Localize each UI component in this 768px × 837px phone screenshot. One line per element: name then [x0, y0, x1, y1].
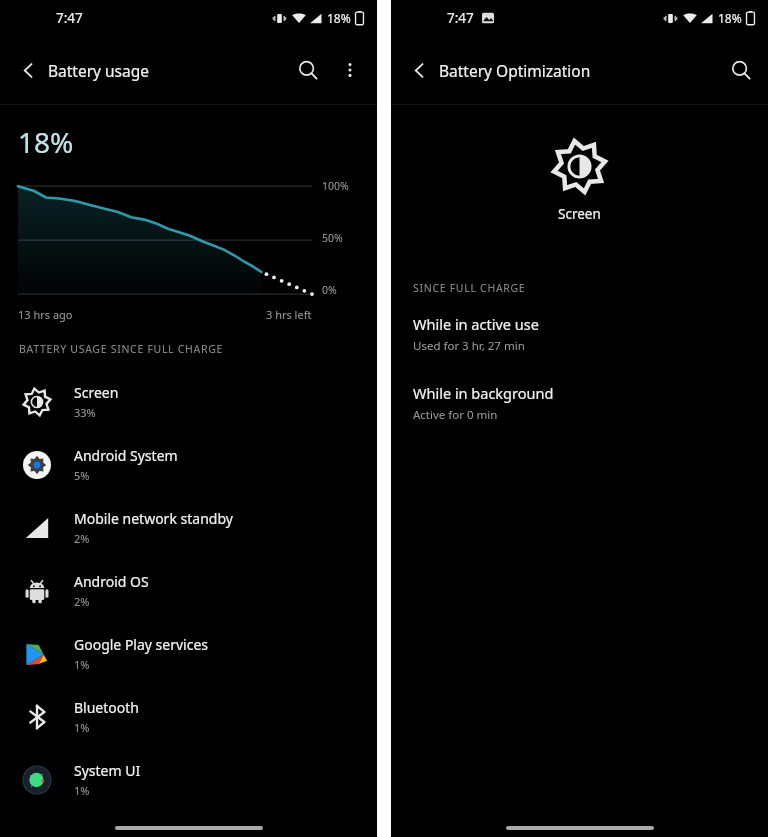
staticText: 1% [74, 783, 90, 798]
staticText: Android System [74, 446, 178, 465]
staticText: 18% [18, 123, 74, 161]
staticText: 50% [322, 231, 343, 245]
button[interactable]: System UI [0, 748, 377, 811]
staticText: 33% [74, 405, 96, 420]
button[interactable]: Android OS [0, 559, 377, 622]
staticText: 18% [718, 10, 742, 26]
staticText: 1% [74, 657, 90, 672]
staticText: Battery Optimization [439, 60, 591, 81]
staticText: 0% [322, 283, 337, 297]
staticText: Battery usage [48, 60, 150, 81]
button[interactable]: Mobile network standby [0, 496, 377, 559]
button[interactable]: Bluetooth [0, 685, 377, 748]
staticText: Bluetooth [74, 698, 139, 717]
staticText: Google Play services [74, 635, 209, 654]
staticText: Screen [74, 383, 119, 402]
staticText: BATTERY USAGE SINCE FULL CHARGE [19, 342, 224, 356]
button[interactable]: Back [8, 50, 48, 90]
staticText: 5% [74, 468, 90, 483]
button[interactable]: More options [329, 49, 371, 91]
staticText: Active for 0 min [413, 407, 498, 423]
button[interactable]: Search [287, 49, 329, 91]
staticText: 1% [74, 720, 90, 735]
button[interactable]: Search [720, 49, 762, 91]
button[interactable]: Back [399, 50, 439, 90]
staticText: 13 hrs ago [18, 307, 73, 322]
staticText: Android OS [74, 572, 149, 591]
staticText: 18% [327, 10, 351, 26]
button[interactable]: Screen [0, 370, 377, 433]
staticText: 7:47 [447, 9, 474, 27]
button[interactable]: While in background [391, 381, 768, 425]
button[interactable]: Android System [0, 433, 377, 496]
staticText: While in background [413, 383, 554, 403]
staticText: 2% [74, 594, 90, 609]
staticText: 3 hrs left [266, 307, 312, 322]
staticText: 2% [74, 531, 90, 546]
staticText: 100% [322, 179, 349, 193]
button[interactable]: Google Play services [0, 622, 377, 685]
staticText: 7:47 [56, 9, 83, 27]
staticText: Screen [558, 205, 601, 223]
button[interactable]: While in active use [391, 312, 768, 356]
staticText: While in active use [413, 314, 539, 334]
staticText: Mobile network standby [74, 509, 233, 528]
staticText: SINCE FULL CHARGE [413, 281, 526, 295]
staticText: Used for 3 hr, 27 min [413, 338, 525, 354]
staticText: System UI [74, 761, 141, 780]
